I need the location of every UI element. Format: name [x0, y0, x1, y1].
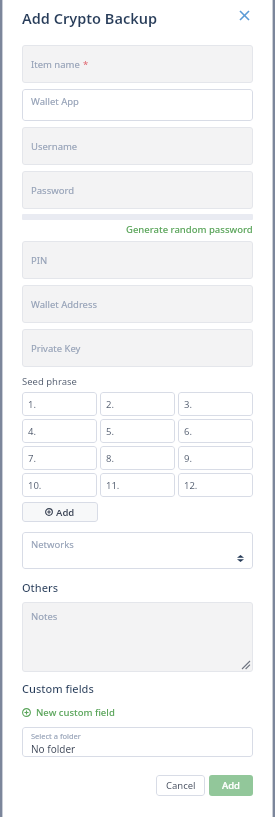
button[interactable]: 11.	[100, 473, 175, 497]
staticText: Add	[56, 506, 75, 519]
button[interactable]: 12.	[178, 473, 253, 497]
staticText: 6.	[184, 425, 192, 438]
staticText: Custom fields	[22, 681, 94, 696]
staticText: 4.	[28, 425, 36, 438]
button[interactable]: New custom field	[22, 706, 115, 719]
button[interactable]: Wallet App	[22, 89, 253, 121]
staticText: Add Crypto Backup	[22, 8, 158, 28]
button[interactable]: Private Key	[22, 329, 253, 367]
staticText: 5.	[106, 425, 114, 438]
button[interactable]: 7.	[22, 446, 97, 470]
button[interactable]: Networks	[22, 532, 253, 569]
staticText: 1.	[28, 398, 36, 411]
staticText: Select a folder	[31, 731, 81, 741]
button[interactable]: 2.	[100, 392, 175, 416]
button[interactable]: Password	[22, 171, 253, 209]
button[interactable]: 4.	[22, 419, 97, 443]
button[interactable]: 9.	[178, 446, 253, 470]
staticText: 10.	[28, 479, 42, 492]
button[interactable]: 8.	[100, 446, 175, 470]
staticText: PIN	[31, 254, 48, 267]
button[interactable]: PIN	[22, 241, 253, 279]
button[interactable]: Close	[235, 6, 253, 24]
staticText: Seed phrase	[22, 375, 77, 388]
button[interactable]: Cancel	[156, 775, 205, 796]
button[interactable]: Wallet Address	[22, 285, 253, 323]
staticText: Cancel	[166, 779, 196, 792]
staticText: 8.	[106, 452, 114, 465]
staticText: Password	[31, 184, 74, 197]
staticText: 3.	[184, 398, 192, 411]
staticText: 11.	[106, 479, 120, 492]
staticText: Networks	[31, 538, 74, 551]
staticText: Generate random password	[126, 223, 253, 236]
button[interactable]: Add	[209, 775, 253, 796]
staticText: Item name	[31, 58, 80, 71]
staticText: Add	[222, 779, 241, 792]
staticText: *	[83, 58, 89, 71]
staticText: Notes	[31, 610, 58, 623]
staticText: Private Key	[31, 342, 81, 355]
staticText: 9.	[184, 452, 192, 465]
button[interactable]: 1.	[22, 392, 97, 416]
staticText: No folder	[31, 742, 76, 756]
button[interactable]: Username	[22, 127, 253, 165]
staticText: 7.	[28, 452, 36, 465]
staticText: 2.	[106, 398, 114, 411]
button[interactable]: 3.	[178, 392, 253, 416]
staticText: Wallet Address	[31, 298, 98, 311]
staticText: 12.	[184, 479, 198, 492]
button[interactable]: Generate random password	[22, 223, 253, 236]
button[interactable]: Select a folder	[22, 727, 253, 757]
staticText: New custom field	[36, 706, 115, 719]
staticText: Others	[22, 580, 59, 595]
button[interactable]: Notes	[22, 602, 253, 672]
staticText: Wallet App	[31, 95, 79, 108]
button[interactable]: Item name	[22, 45, 253, 83]
button[interactable]: Add	[22, 502, 98, 522]
button[interactable]: 6.	[178, 419, 253, 443]
staticText: Username	[31, 140, 78, 153]
button[interactable]: 10.	[22, 473, 97, 497]
button[interactable]: 5.	[100, 419, 175, 443]
